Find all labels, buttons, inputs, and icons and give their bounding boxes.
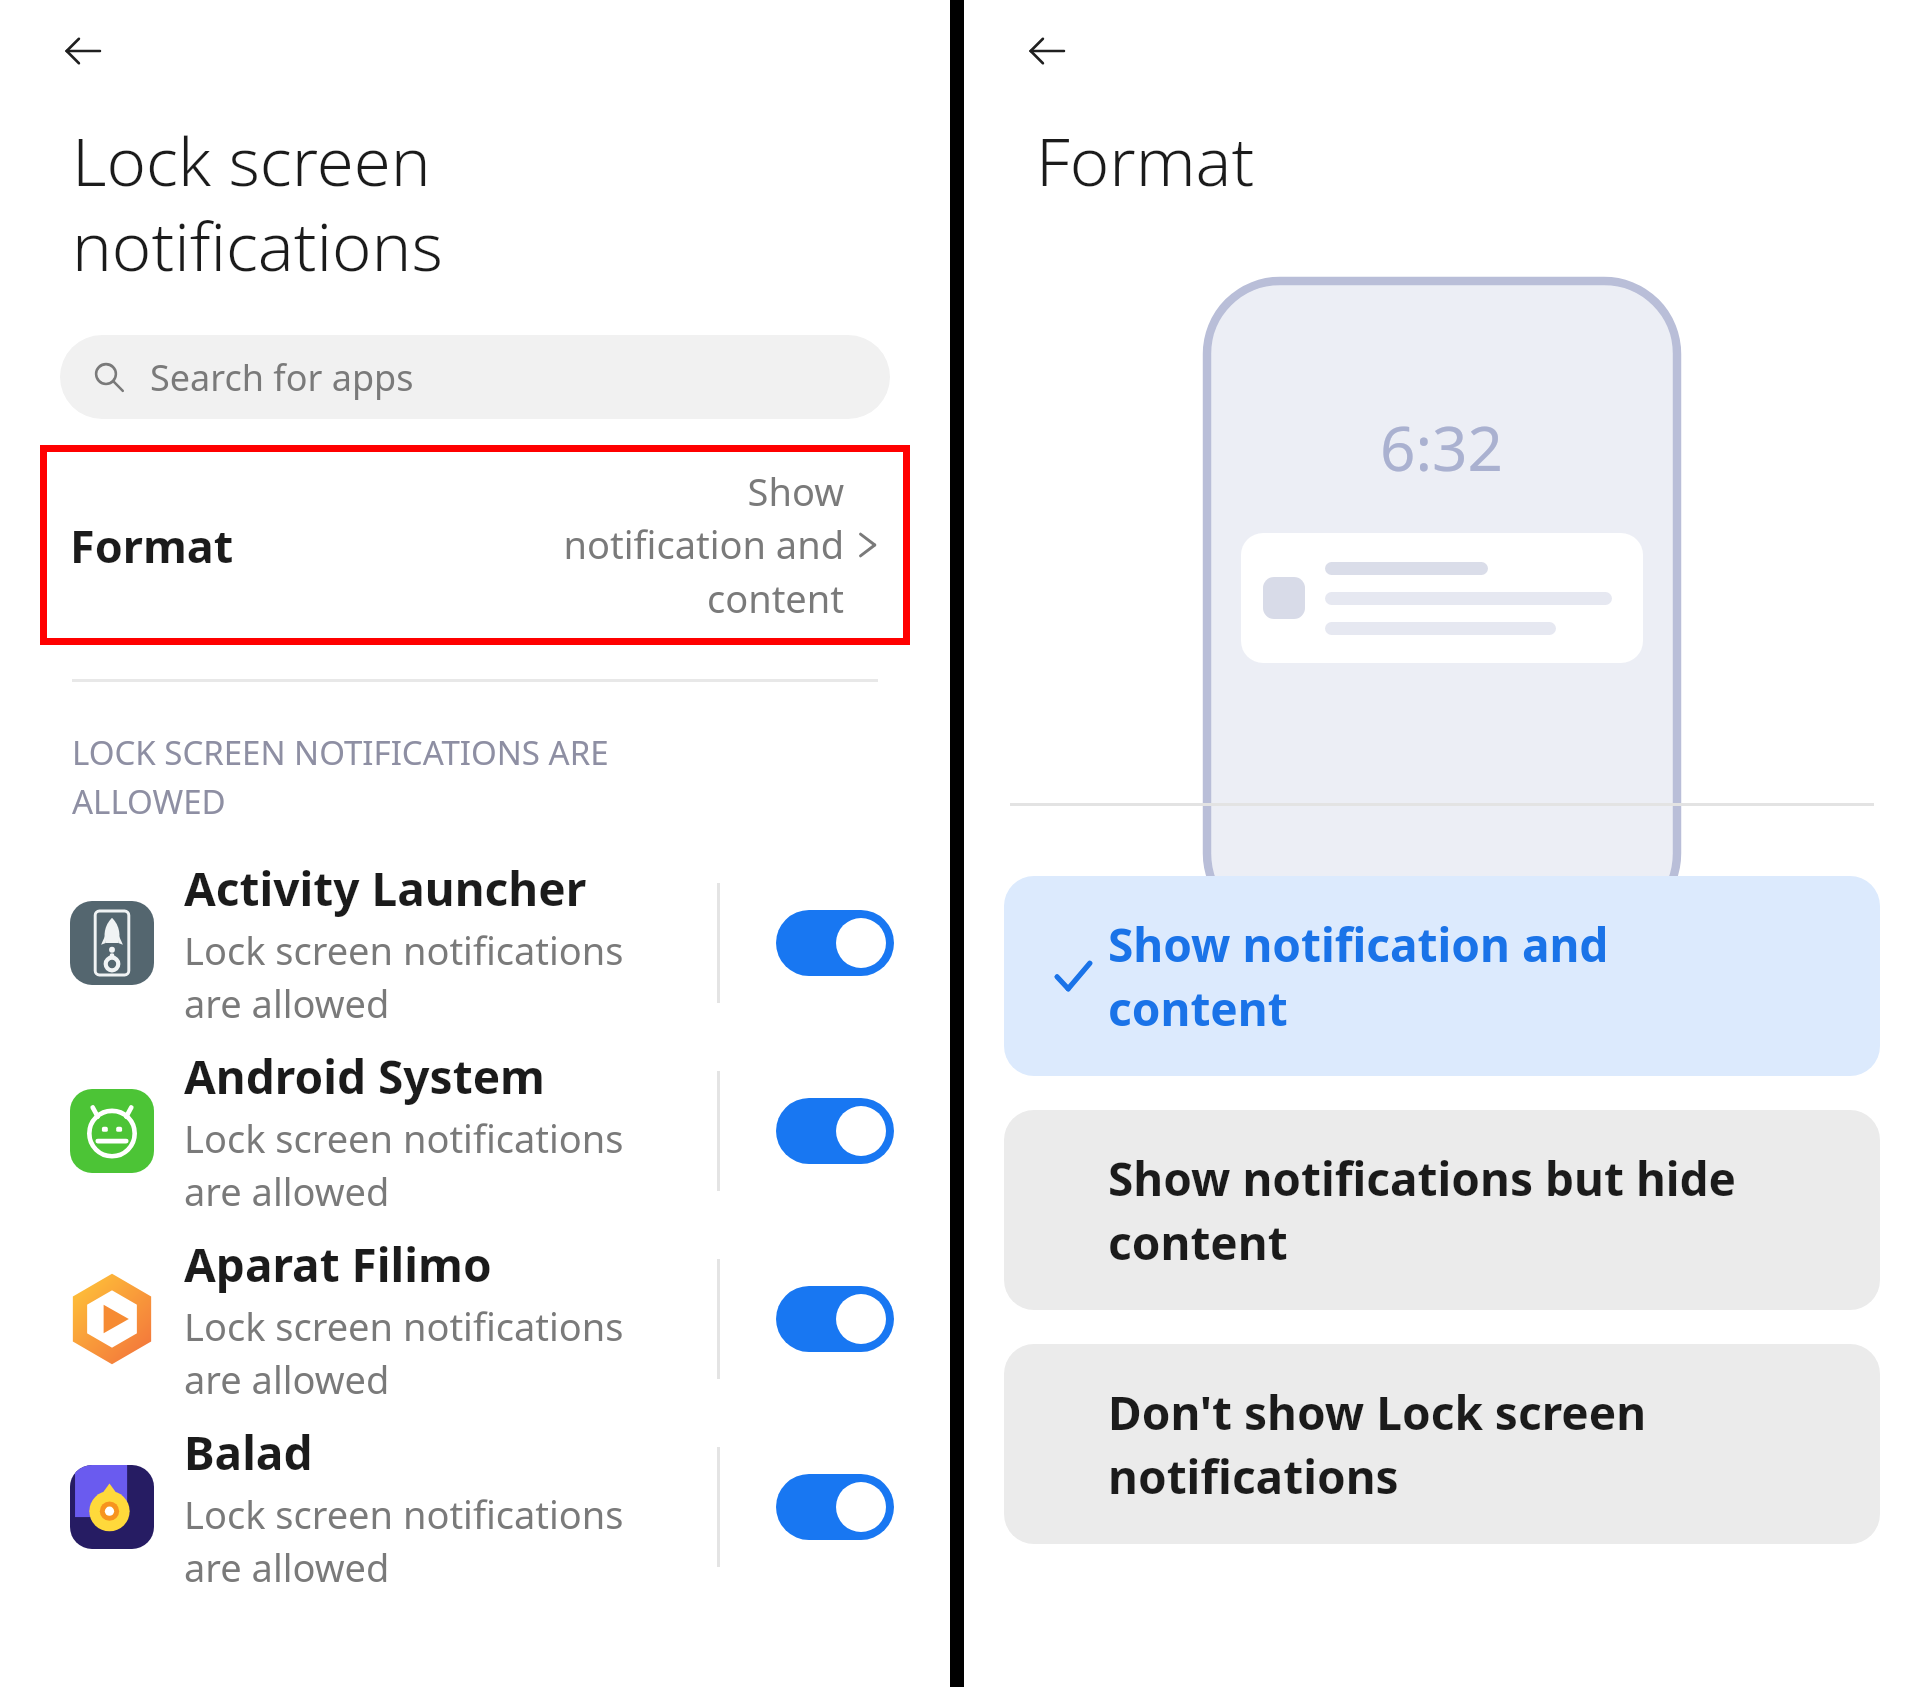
- button[interactable]: Activity Launcher: [0, 849, 950, 1037]
- staticText: Search for apps: [150, 353, 414, 402]
- staticText: LOCK SCREEN NOTIFICATIONS ARE ALLOWED: [72, 730, 609, 823]
- staticText: Show notification and content: [563, 465, 844, 625]
- button[interactable]: Search for apps: [60, 335, 890, 419]
- staticText: Lock screen notifications are allowed: [184, 1488, 624, 1594]
- button[interactable]: Don't show Lock screen notifications: [1004, 1344, 1880, 1544]
- button[interactable]: Toggle: [776, 1474, 894, 1540]
- button[interactable]: Toggle: [776, 1286, 894, 1352]
- staticText: Lock screen notifications: [72, 114, 443, 291]
- staticText: Don't show Lock screen notifications: [1108, 1381, 1647, 1508]
- staticText: Lock screen notifications are allowed: [184, 924, 624, 1030]
- button[interactable]: Aparat Filimo: [0, 1225, 950, 1413]
- button[interactable]: Toggle: [776, 1098, 894, 1164]
- staticText: Lock screen notifications are allowed: [184, 1300, 624, 1406]
- staticText: Format: [1036, 114, 1255, 205]
- button[interactable]: Toggle: [776, 910, 894, 976]
- button[interactable]: Back: [46, 14, 120, 88]
- button[interactable]: Android System: [0, 1037, 950, 1225]
- button[interactable]: Back: [1010, 14, 1084, 88]
- button[interactable]: Format: [40, 445, 910, 645]
- staticText: Aparat Filimo: [184, 1233, 492, 1296]
- staticText: Show notifications but hide content: [1108, 1147, 1737, 1274]
- staticText: Balad: [184, 1421, 313, 1484]
- staticText: Lock screen notifications are allowed: [184, 1112, 624, 1218]
- staticText: 6:32: [1380, 405, 1504, 489]
- staticText: Activity Launcher: [184, 857, 587, 920]
- button[interactable]: Show notifications but hide content: [1004, 1110, 1880, 1310]
- staticText: Show notification and content: [1108, 913, 1609, 1040]
- button[interactable]: Show notification and content: [1004, 876, 1880, 1076]
- button[interactable]: Balad: [0, 1413, 950, 1601]
- staticText: Android System: [184, 1045, 545, 1108]
- staticText: Format: [70, 515, 234, 576]
